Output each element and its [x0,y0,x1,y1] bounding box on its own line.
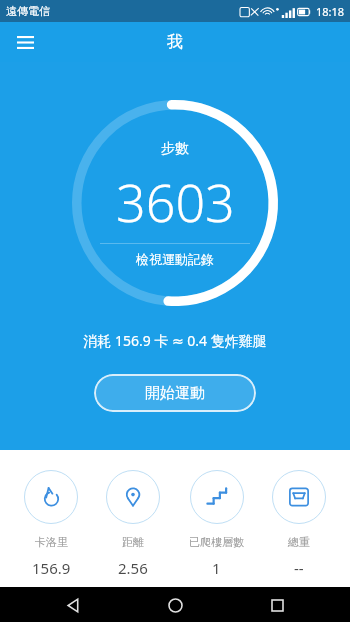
staticText: 遠傳電信 [6,4,50,18]
button[interactable]: Back [58,590,88,620]
staticText: 2.56 [118,558,148,578]
staticText: 已爬樓層數 [189,535,244,549]
button[interactable]: 總重 [268,470,330,578]
staticText: 我 [167,32,183,52]
staticText: 18:18 [316,4,345,19]
staticText: 消耗 156.9 卡 ≈ 0.4 隻炸雞腿 [83,331,267,350]
staticText: 156.9 [32,558,71,578]
button[interactable]: Menu [8,25,42,59]
staticText: 總重 [288,535,310,549]
button[interactable]: 卡洛里 [20,470,82,578]
button[interactable]: 步數 [72,100,278,306]
staticText: 距離 [122,535,144,549]
button[interactable]: Home [160,590,190,620]
button[interactable]: Recents [262,590,292,620]
staticText: 檢視運動記錄 [136,251,214,267]
button[interactable]: 已爬樓層數 [185,470,248,578]
staticText: 1 [212,558,221,578]
button[interactable]: 開始運動 [94,374,256,412]
staticText: 步數 [161,140,189,158]
staticText: 卡洛里 [35,535,68,549]
staticText: 開始運動 [145,384,205,403]
staticText: 3603 [116,166,235,237]
staticText: -- [294,558,304,578]
button[interactable]: 距離 [102,470,164,578]
